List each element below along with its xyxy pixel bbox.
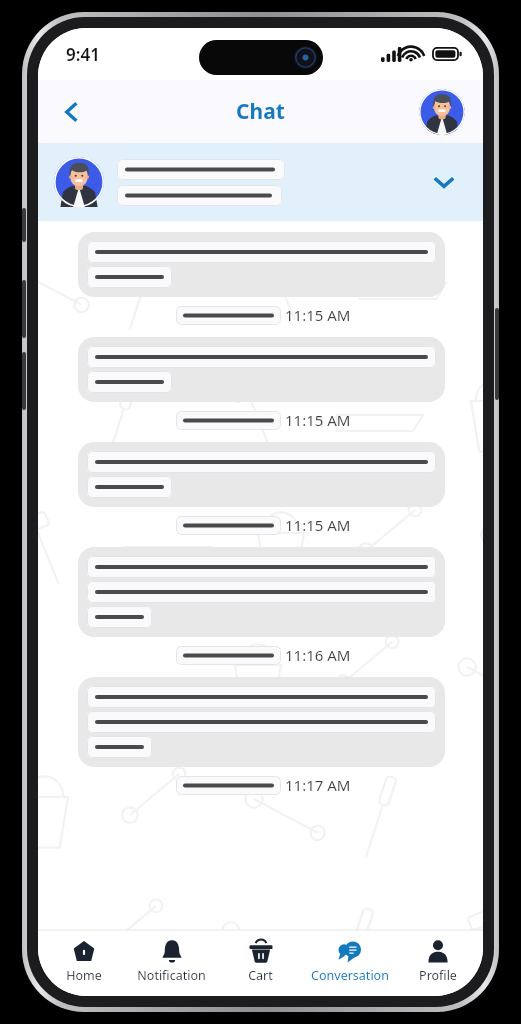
button[interactable]: Profile — [419, 89, 465, 135]
staticText: Cart — [248, 967, 273, 984]
button[interactable]: Cart — [217, 930, 304, 988]
staticText: 9:41 — [66, 43, 100, 66]
staticText: Conversation — [311, 967, 389, 984]
staticText: 11:15 AM — [285, 410, 351, 430]
button[interactable] — [78, 337, 445, 402]
button[interactable]: Expand — [38, 143, 483, 221]
staticText: 11:15 AM — [285, 305, 351, 325]
button[interactable] — [78, 442, 445, 507]
button[interactable] — [78, 547, 445, 637]
button[interactable]: Conversation — [306, 930, 393, 988]
staticText: 11:15 AM — [285, 515, 351, 535]
staticText: 11:17 AM — [285, 775, 351, 795]
staticText: Notification — [137, 967, 206, 984]
button[interactable]: Profile — [394, 930, 481, 988]
button[interactable] — [78, 232, 445, 297]
staticText: Home — [66, 967, 102, 984]
staticText: 11:16 AM — [285, 645, 351, 665]
button[interactable]: Back — [50, 90, 94, 134]
staticText: Chat — [236, 97, 285, 126]
staticText: Profile — [419, 967, 457, 984]
button[interactable]: Notification — [128, 930, 215, 988]
button[interactable]: Expand — [425, 163, 463, 201]
button[interactable]: Home — [40, 930, 127, 988]
button[interactable] — [78, 677, 445, 767]
